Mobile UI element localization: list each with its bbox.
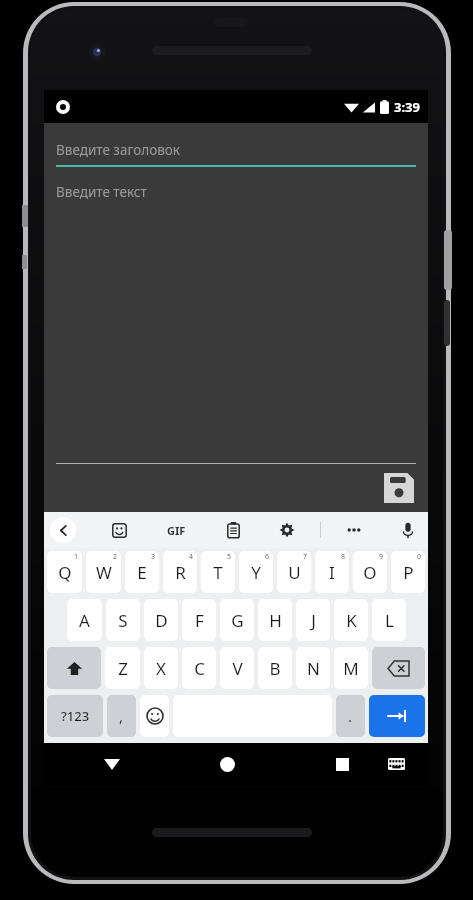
staticText: 7	[303, 552, 308, 562]
button[interactable]: Sticker	[107, 518, 131, 542]
staticText: F	[195, 609, 204, 632]
button[interactable]: Y	[239, 551, 273, 593]
staticText: 3:39	[394, 98, 420, 116]
staticText: T	[213, 561, 223, 584]
button[interactable]: P	[391, 551, 425, 593]
button[interactable]: ?123	[47, 695, 103, 737]
staticText: 3	[151, 552, 156, 562]
button[interactable]: V	[220, 647, 254, 689]
staticText: E	[137, 561, 147, 584]
staticText: X	[156, 657, 166, 680]
staticText: B	[269, 657, 281, 680]
staticText: J	[311, 609, 316, 632]
staticText: I	[329, 561, 335, 584]
staticText: A	[79, 609, 90, 632]
staticText: K	[346, 609, 357, 632]
button[interactable]: Settings	[275, 518, 299, 542]
staticText: L	[385, 609, 394, 632]
button[interactable]: Z	[105, 647, 140, 689]
staticText: Введите текст	[56, 183, 147, 201]
button[interactable]: Введите текст	[56, 183, 416, 463]
button[interactable]: Recents	[325, 747, 359, 781]
button[interactable]: D	[144, 599, 178, 641]
staticText: 4	[189, 552, 194, 562]
staticText: 2	[113, 552, 118, 562]
staticText: D	[155, 609, 168, 632]
button[interactable]: Home	[210, 747, 244, 781]
staticText: ,	[119, 706, 124, 726]
staticText: C	[194, 657, 205, 680]
staticText: P	[403, 561, 414, 584]
staticText: Q	[58, 561, 72, 584]
button[interactable]: M	[334, 647, 368, 689]
button[interactable]: U	[277, 551, 311, 593]
staticText: U	[288, 561, 301, 584]
button[interactable]: I	[315, 551, 349, 593]
button[interactable]: L	[372, 599, 406, 641]
button[interactable]: G	[220, 599, 254, 641]
button[interactable]: A	[67, 599, 102, 641]
button[interactable]: O	[353, 551, 387, 593]
staticText: Y	[251, 561, 261, 584]
button[interactable]: Period	[336, 695, 365, 737]
staticText: 0	[417, 552, 422, 562]
button[interactable]: Hide keyboard	[95, 747, 129, 781]
staticText: 6	[265, 552, 270, 562]
button[interactable]: GIF	[161, 518, 191, 542]
staticText: Z	[118, 657, 128, 680]
button[interactable]: More	[342, 518, 366, 542]
button[interactable]: Comma	[107, 695, 136, 737]
button[interactable]: Emoji	[140, 695, 169, 737]
staticText: GIF	[167, 523, 186, 538]
button[interactable]: N	[296, 647, 330, 689]
staticText: Введите заголовок	[56, 141, 180, 159]
button[interactable]: F	[182, 599, 216, 641]
button[interactable]: Back	[50, 517, 76, 543]
button[interactable]: J	[296, 599, 330, 641]
button[interactable]: X	[144, 647, 178, 689]
button[interactable]: Enter	[369, 695, 425, 737]
button[interactable]: K	[334, 599, 368, 641]
staticText: 1	[74, 552, 79, 562]
staticText: H	[269, 609, 282, 632]
staticText: W	[96, 561, 112, 584]
button[interactable]: Clipboard	[221, 518, 245, 542]
button[interactable]: C	[182, 647, 216, 689]
staticText: 8	[341, 552, 346, 562]
button[interactable]: Save	[384, 473, 414, 503]
button[interactable]: R	[163, 551, 197, 593]
staticText: .	[348, 706, 353, 726]
staticText: M	[343, 657, 359, 680]
button[interactable]: Backspace	[372, 647, 425, 689]
staticText: 5	[227, 552, 232, 562]
button[interactable]: S	[106, 599, 140, 641]
staticText: N	[307, 657, 320, 680]
button[interactable]: W	[86, 551, 121, 593]
button[interactable]: B	[258, 647, 292, 689]
button[interactable]: Voice input	[396, 518, 420, 542]
staticText: G	[231, 609, 244, 632]
staticText: S	[118, 609, 128, 632]
staticText: 9	[379, 552, 384, 562]
staticText: O	[363, 561, 377, 584]
staticText: V	[232, 657, 243, 680]
button[interactable]: Switch keyboard	[381, 749, 411, 779]
staticText: R	[175, 561, 186, 584]
staticText: ?123	[61, 707, 90, 725]
button[interactable]: Shift	[47, 647, 101, 689]
button[interactable]: T	[201, 551, 235, 593]
button[interactable]: E	[125, 551, 159, 593]
button[interactable]: Q	[47, 551, 82, 593]
button[interactable]: H	[258, 599, 292, 641]
button[interactable]: Введите заголовок	[56, 141, 416, 167]
